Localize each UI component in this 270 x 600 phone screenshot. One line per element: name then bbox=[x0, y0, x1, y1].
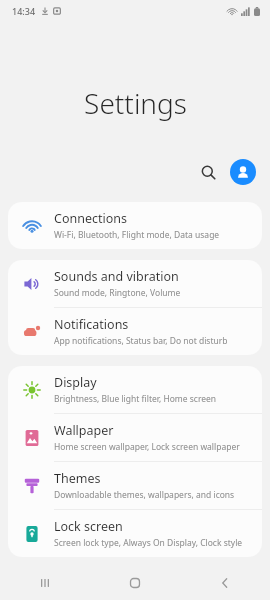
button[interactable]: Connections bbox=[8, 202, 262, 249]
button[interactable]: Lock screen bbox=[8, 510, 262, 557]
button[interactable]: Recents bbox=[0, 566, 90, 600]
button[interactable]: Sounds and vibration bbox=[8, 260, 262, 307]
staticText: Wi-Fi, Bluetooth, Flight mode, Data usag… bbox=[54, 229, 220, 241]
staticText: Downloadable themes, wallpapers, and ico… bbox=[54, 489, 235, 501]
staticText: Settings bbox=[84, 84, 187, 122]
staticText: Themes bbox=[54, 470, 101, 487]
staticText: Screen lock type, Always On Display, Clo… bbox=[54, 537, 243, 549]
staticText: Home screen wallpaper, Lock screen wallp… bbox=[54, 441, 240, 453]
staticText: Wallpaper bbox=[54, 422, 114, 439]
button[interactable]: Account bbox=[230, 159, 256, 185]
staticText: Notifications bbox=[54, 316, 129, 333]
button[interactable]: Back bbox=[180, 566, 270, 600]
button[interactable]: Wallpaper bbox=[8, 414, 262, 461]
button[interactable]: Display bbox=[8, 366, 262, 413]
staticText: Connections bbox=[54, 210, 127, 227]
staticText: Brightness, Blue light filter, Home scre… bbox=[54, 393, 217, 405]
button[interactable]: Themes bbox=[8, 462, 262, 509]
button[interactable]: Home bbox=[90, 566, 180, 600]
staticText: Sounds and vibration bbox=[54, 268, 179, 285]
button[interactable]: Notifications bbox=[8, 308, 262, 355]
staticText: App notifications, Status bar, Do not di… bbox=[54, 335, 228, 347]
staticText: Display bbox=[54, 374, 97, 391]
staticText: 14:34 bbox=[12, 5, 36, 17]
staticText: Lock screen bbox=[54, 518, 123, 535]
staticText: Sound mode, Ringtone, Volume bbox=[54, 287, 181, 299]
button[interactable]: Search bbox=[192, 156, 224, 188]
